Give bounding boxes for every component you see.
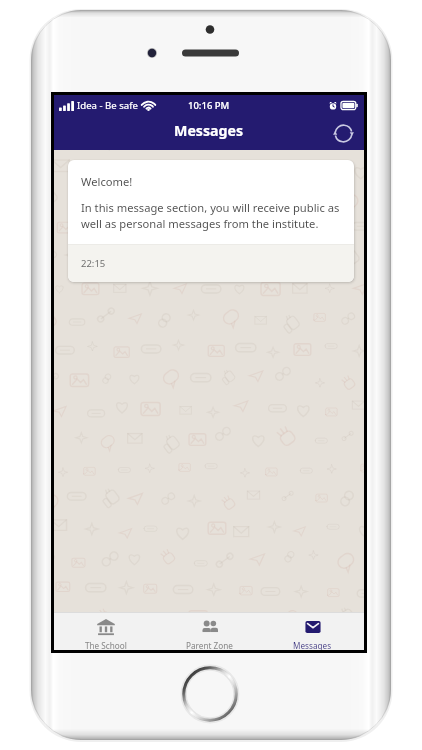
button[interactable]: Parent Zone bbox=[158, 613, 261, 650]
staticText: 22:15 bbox=[81, 257, 106, 270]
button[interactable]: Refresh bbox=[329, 119, 357, 147]
staticText: Messages bbox=[293, 640, 332, 650]
staticText: Messages bbox=[174, 121, 244, 140]
button[interactable]: Messages bbox=[261, 613, 364, 650]
staticText: The School bbox=[85, 640, 127, 650]
staticText: Welcome! bbox=[81, 174, 133, 189]
staticText: Idea - Be safe bbox=[77, 99, 138, 112]
staticText: In this message section, you will receiv… bbox=[81, 200, 343, 231]
button[interactable]: Welcome! bbox=[68, 160, 354, 282]
staticText: Parent Zone bbox=[186, 640, 233, 650]
button[interactable]: The School bbox=[54, 613, 158, 650]
staticText: 10:16 PM bbox=[188, 99, 230, 112]
